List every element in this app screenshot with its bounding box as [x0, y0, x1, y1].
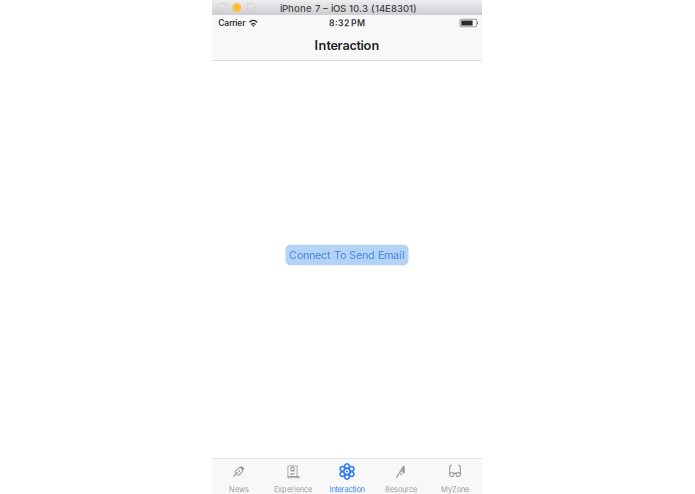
staticText: iPhone 7 – iOS 10.3 (14E8301) — [280, 3, 417, 14]
staticText: Interaction — [314, 38, 379, 53]
staticText: Carrier — [218, 18, 245, 28]
button[interactable]: Experience — [266, 459, 320, 494]
staticText: Resource — [385, 485, 417, 494]
button[interactable]: News — [212, 459, 266, 494]
button[interactable]: MyZone — [428, 459, 482, 494]
button[interactable]: Connect To Send Email — [285, 245, 408, 265]
button[interactable]: Interaction — [320, 459, 374, 494]
staticText: News — [229, 485, 249, 494]
button[interactable]: Resource — [374, 459, 428, 494]
staticText: Experience — [274, 485, 312, 494]
staticText: MyZone — [441, 485, 469, 494]
staticText: Connect To Send Email — [289, 248, 405, 262]
staticText: 8:32 PM — [329, 18, 365, 28]
staticText: Interaction — [329, 485, 364, 494]
